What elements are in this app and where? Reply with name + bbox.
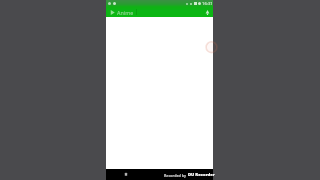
button[interactable]: Play [108,8,116,16]
staticText: Anime [117,9,134,16]
button[interactable]: Filter [203,8,211,16]
staticText: 16:31 [202,1,213,7]
staticText: DU Recorder [188,172,215,178]
staticText: Recorded by [164,173,187,178]
button[interactable]: Home [123,171,129,177]
